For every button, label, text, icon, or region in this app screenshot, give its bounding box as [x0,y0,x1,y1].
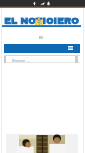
button[interactable] [4,44,80,53]
button[interactable]: Facebook [32,1,37,6]
button[interactable]: EL NOTICIERO [4,16,79,26]
staticText: Buscar ... [12,58,30,64]
button[interactable] [6,134,78,153]
button[interactable]: Share [46,1,51,6]
button[interactable]: Open menu [68,46,73,50]
button[interactable]: Buscar ... [4,55,80,63]
button[interactable]: Twitter [40,1,45,6]
